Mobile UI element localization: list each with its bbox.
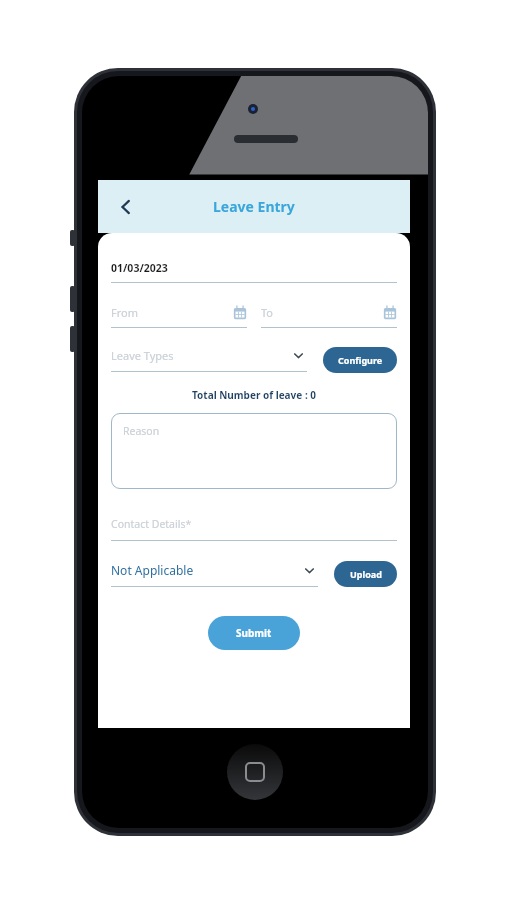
button[interactable]: From bbox=[111, 305, 247, 328]
button[interactable]: Reason bbox=[111, 413, 397, 489]
other: Pick date bbox=[383, 306, 397, 320]
staticText: Upload bbox=[350, 568, 382, 580]
staticText: Total Number of leave : 0 bbox=[111, 388, 397, 402]
button[interactable]: Upload bbox=[334, 561, 397, 587]
staticText: Leave Types bbox=[111, 348, 293, 363]
button[interactable]: Contact Details* bbox=[111, 517, 397, 541]
other: Pick date bbox=[233, 306, 247, 320]
other: Expand bbox=[293, 350, 304, 361]
staticText: Submit bbox=[236, 626, 272, 640]
staticText: Reason bbox=[123, 424, 160, 438]
staticText: Not Applicable bbox=[111, 562, 304, 578]
button[interactable]: To bbox=[261, 305, 397, 328]
button[interactable]: Not Applicable bbox=[111, 562, 318, 587]
button[interactable]: Home bbox=[227, 744, 283, 800]
staticText: To bbox=[261, 305, 383, 320]
button[interactable]: Back bbox=[106, 187, 146, 227]
staticText: Contact Details* bbox=[111, 517, 192, 531]
staticText: From bbox=[111, 305, 233, 320]
button[interactable]: Submit bbox=[208, 616, 300, 650]
button[interactable]: Configure bbox=[323, 347, 397, 373]
staticText: 01/03/2023 bbox=[111, 261, 168, 275]
staticText: Leave Entry bbox=[213, 197, 295, 216]
button[interactable]: Leave Types bbox=[111, 348, 307, 372]
other: Expand bbox=[304, 565, 315, 576]
staticText: Configure bbox=[338, 354, 383, 366]
